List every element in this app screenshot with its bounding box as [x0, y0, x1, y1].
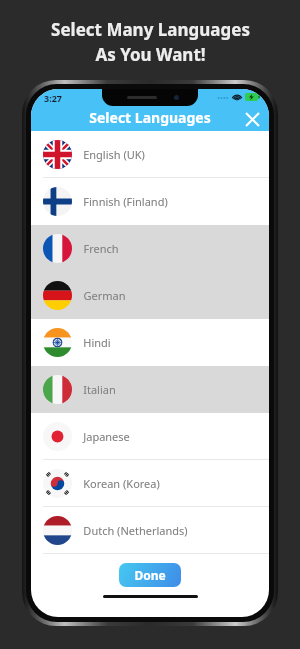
staticText: German [83, 288, 126, 303]
staticText: Select Languages [89, 108, 211, 127]
staticText: As You Want! [95, 43, 206, 66]
staticText: English (UK) [83, 147, 145, 162]
button[interactable]: Finnish (Finland) [31, 178, 269, 225]
staticText: Done [134, 567, 166, 583]
button[interactable]: Japanese [31, 413, 269, 460]
staticText: Select Many Languages [51, 18, 250, 41]
button[interactable]: Hindi [31, 319, 269, 366]
button[interactable]: Done [119, 563, 181, 587]
staticText: French [83, 241, 119, 256]
staticText: Hindi [83, 335, 111, 350]
button[interactable]: English (UK) [31, 131, 269, 178]
button[interactable]: Dutch (Netherlands) [31, 507, 269, 554]
button[interactable]: Korean (Korea) [31, 460, 269, 507]
button[interactable]: German [31, 272, 269, 319]
staticText: Korean (Korea) [83, 476, 160, 491]
button[interactable]: French [31, 225, 269, 272]
staticText: Dutch (Netherlands) [83, 523, 188, 538]
button[interactable]: Close [241, 108, 263, 130]
staticText: Finnish (Finland) [83, 194, 168, 209]
staticText: Italian [83, 382, 116, 397]
staticText: 3:27 [44, 92, 62, 104]
button[interactable]: Italian [31, 366, 269, 413]
staticText: Japanese [83, 429, 130, 444]
